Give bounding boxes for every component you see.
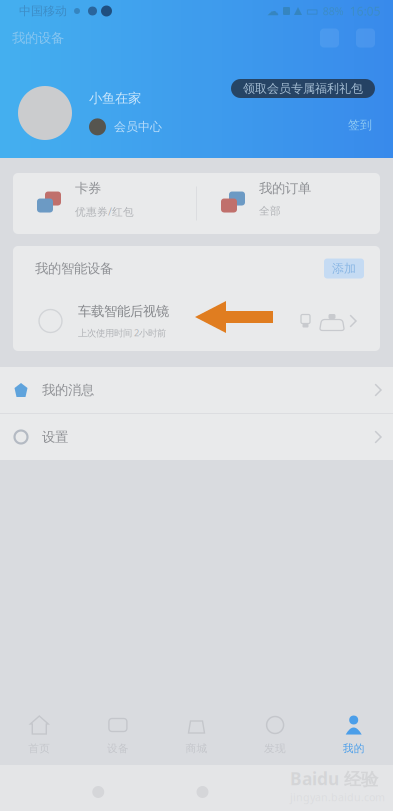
button[interactable]: Messages <box>356 28 375 47</box>
staticText: 我的设备 <box>12 30 64 46</box>
button[interactable]: Back <box>92 786 104 798</box>
staticText: 全部 <box>259 204 281 217</box>
staticText: 领取会员专属福利礼包 <box>243 81 363 96</box>
staticText: 商城 <box>185 742 207 755</box>
button[interactable]: Home <box>196 786 208 798</box>
staticText: ☁ <box>267 4 279 18</box>
button[interactable]: 我的消息 <box>0 367 393 413</box>
staticText: 车载智能后视镜 <box>78 303 169 319</box>
staticText: ▭ <box>306 3 319 18</box>
staticText: 添加 <box>332 261 356 276</box>
staticText: 我的消息 <box>42 382 94 398</box>
staticText: 88% <box>323 4 344 18</box>
button[interactable]: Profile photo <box>18 86 72 140</box>
staticText: 首页 <box>28 742 50 755</box>
button[interactable]: 车载智能后视镜 <box>13 291 380 351</box>
staticText: 16:05 <box>350 3 381 19</box>
staticText: 我的 <box>343 742 365 755</box>
staticText: 卡券 <box>75 180 101 196</box>
staticText: 我的智能设备 <box>35 260 113 277</box>
button[interactable]: Scan code <box>320 28 339 47</box>
staticText: Baidu 经验 <box>290 767 378 790</box>
staticText: 我的订单 <box>259 180 311 196</box>
button[interactable]: 签到 <box>345 119 375 131</box>
staticText: 发现 <box>264 742 286 755</box>
staticText: 设置 <box>42 429 68 445</box>
staticText: 小鱼在家 <box>89 90 141 106</box>
staticText: 中国移动 <box>19 4 67 18</box>
staticText: 上次使用时间 2小时前 <box>78 326 166 339</box>
button[interactable]: 卡券 <box>13 173 196 234</box>
button[interactable]: 领取会员专属福利礼包 <box>231 79 375 98</box>
button[interactable]: 添加 <box>324 258 364 278</box>
button[interactable]: 我的订单 <box>197 173 380 234</box>
button[interactable]: 我的 <box>314 700 393 765</box>
staticText: 设备 <box>107 742 129 755</box>
staticText: 会员中心 <box>114 119 162 134</box>
staticText: 优惠券/红包 <box>75 204 134 219</box>
button[interactable]: 设置 <box>0 414 393 460</box>
staticText: 签到 <box>348 118 372 132</box>
